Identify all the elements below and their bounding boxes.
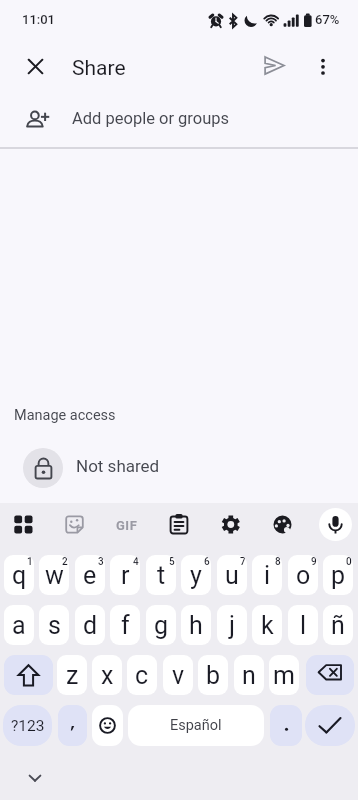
staticText: b	[206, 661, 221, 690]
button[interactable]: Enter	[305, 705, 355, 746]
staticText: j	[229, 611, 235, 640]
button[interactable]: Send	[256, 47, 293, 84]
staticText: v	[172, 661, 185, 690]
staticText: Not shared	[76, 456, 160, 476]
staticText: n	[242, 661, 256, 690]
staticText: d	[83, 611, 98, 640]
button[interactable]: s	[39, 605, 69, 645]
button[interactable]: Comma	[58, 705, 87, 746]
staticText: 67%	[315, 12, 340, 27]
staticText: 8	[275, 556, 281, 568]
button[interactable]: a	[4, 605, 34, 645]
button[interactable]: Backspace	[306, 655, 354, 695]
button[interactable]: More options	[304, 48, 341, 85]
staticText: 7	[240, 556, 246, 568]
button[interactable]: Add people or groups	[0, 96, 358, 147]
button[interactable]: Hide keyboard	[22, 765, 47, 790]
staticText: Share	[72, 56, 126, 81]
button[interactable]: g	[146, 605, 176, 645]
button[interactable]: Close	[17, 48, 54, 85]
staticText: m	[273, 661, 295, 690]
staticText: o	[296, 561, 311, 590]
staticText: f	[121, 611, 130, 640]
staticText: c	[135, 661, 149, 690]
button[interactable]: w	[39, 555, 69, 595]
staticText: 6	[204, 556, 210, 568]
staticText: l	[300, 611, 307, 640]
staticText: GIF	[116, 518, 138, 533]
button[interactable]: m	[269, 655, 299, 695]
button[interactable]: c	[127, 655, 157, 695]
staticText: p	[331, 561, 346, 590]
staticText: 1	[27, 556, 33, 568]
staticText: g	[154, 611, 169, 640]
button[interactable]: u	[217, 555, 247, 595]
button[interactable]: Shift	[4, 655, 53, 695]
button[interactable]: n	[234, 655, 264, 695]
staticText: w	[45, 561, 64, 590]
button[interactable]: Not shared	[0, 440, 358, 496]
button[interactable]: Español	[128, 705, 264, 746]
button[interactable]: b	[198, 655, 228, 695]
button[interactable]: x	[92, 655, 122, 695]
button[interactable]: p	[323, 555, 353, 595]
button[interactable]: Period	[270, 705, 302, 746]
staticText: 2	[62, 556, 68, 568]
button[interactable]: v	[163, 655, 193, 695]
staticText: ñ	[331, 611, 345, 640]
button[interactable]: Emoji	[92, 705, 123, 746]
staticText: Add people or groups	[72, 109, 230, 128]
button[interactable]: ñ	[323, 605, 353, 645]
staticText: a	[12, 611, 26, 640]
staticText: r	[121, 561, 130, 590]
button[interactable]: Voice input	[319, 508, 352, 541]
button[interactable]: f	[110, 605, 140, 645]
staticText: 11:01	[22, 12, 56, 27]
button[interactable]: i	[252, 555, 282, 595]
staticText: 3	[98, 556, 104, 568]
staticText: 4	[133, 556, 139, 568]
staticText: 5	[169, 556, 175, 568]
staticText: e	[83, 561, 97, 590]
button[interactable]: q	[4, 555, 34, 595]
button[interactable]: y	[181, 555, 211, 595]
button[interactable]: j	[217, 605, 247, 645]
staticText: u	[225, 561, 239, 590]
staticText: Manage access	[14, 407, 116, 424]
button[interactable]: h	[181, 605, 211, 645]
staticText: q	[12, 561, 27, 590]
staticText: x	[101, 661, 114, 690]
staticText: t	[157, 561, 166, 590]
button[interactable]: GIF	[108, 503, 146, 549]
button[interactable]: e	[75, 555, 105, 595]
staticText: i	[264, 561, 271, 590]
staticText: z	[66, 661, 79, 690]
staticText: 9	[311, 556, 317, 568]
staticText: k	[261, 611, 274, 640]
staticText: s	[48, 611, 61, 640]
button[interactable]: d	[75, 605, 105, 645]
button[interactable]: z	[57, 655, 87, 695]
button[interactable]: r	[110, 555, 140, 595]
button[interactable]: l	[288, 605, 318, 645]
button[interactable]: o	[288, 555, 318, 595]
staticText: 0	[346, 556, 352, 568]
staticText: Español	[170, 717, 222, 734]
button[interactable]: t	[146, 555, 176, 595]
button[interactable]: ?123	[3, 705, 52, 746]
staticText: y	[190, 561, 202, 590]
staticText: ?123	[11, 717, 45, 735]
button[interactable]: k	[252, 605, 282, 645]
staticText: h	[189, 611, 203, 640]
